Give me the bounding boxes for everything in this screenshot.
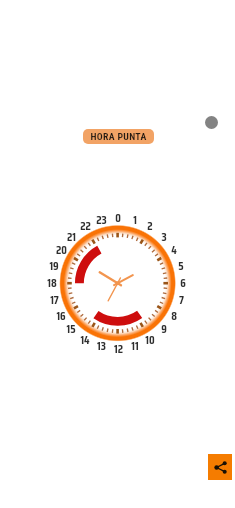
staticText: 19 bbox=[49, 257, 59, 270]
button[interactable]: HORA PUNTA bbox=[83, 129, 154, 144]
staticText: 23 bbox=[96, 211, 107, 224]
staticText: HORA PUNTA bbox=[90, 131, 147, 142]
staticText: 6 bbox=[180, 274, 186, 287]
staticText: 17 bbox=[50, 291, 59, 304]
staticText: 18 bbox=[47, 274, 57, 287]
staticText: 9 bbox=[161, 320, 167, 333]
staticText: 7 bbox=[179, 291, 184, 304]
button[interactable]: Indicator bbox=[205, 116, 218, 129]
staticText: 14 bbox=[80, 331, 90, 344]
staticText: 13 bbox=[97, 337, 106, 350]
staticText: 4 bbox=[171, 241, 177, 254]
staticText: 3 bbox=[161, 228, 167, 241]
staticText: 16 bbox=[56, 307, 66, 320]
button[interactable]: Share bbox=[208, 454, 232, 480]
staticText: 2 bbox=[147, 217, 153, 230]
staticText: 22 bbox=[80, 217, 91, 230]
staticText: 12 bbox=[114, 340, 123, 353]
staticText: 0 bbox=[115, 209, 121, 222]
staticText: 11 bbox=[131, 337, 139, 350]
staticText: 15 bbox=[66, 320, 76, 333]
staticText: 1 bbox=[133, 211, 137, 224]
staticText: 20 bbox=[56, 241, 67, 254]
staticText: 10 bbox=[145, 331, 155, 344]
staticText: 5 bbox=[178, 257, 184, 270]
staticText: 21 bbox=[67, 228, 76, 241]
staticText: 8 bbox=[171, 307, 177, 320]
